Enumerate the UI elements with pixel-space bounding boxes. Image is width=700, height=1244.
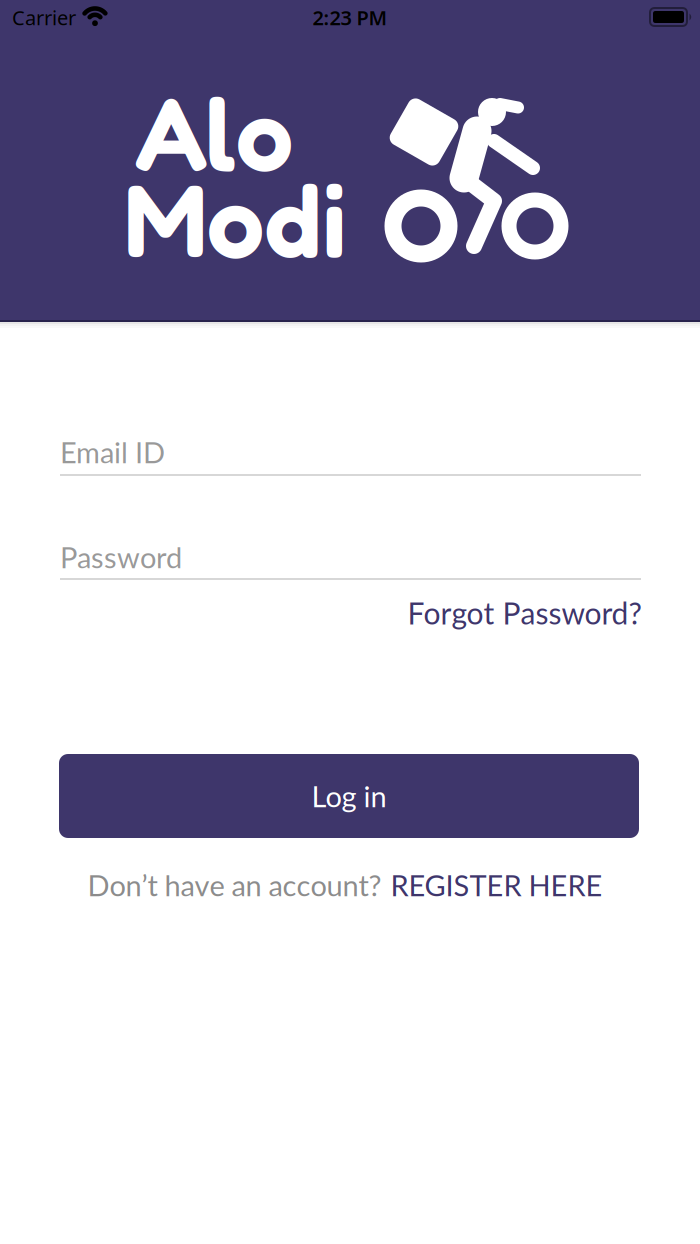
button[interactable]: Email ID bbox=[60, 429, 641, 481]
staticText: Don’t have an account? bbox=[87, 868, 381, 902]
staticText: Password bbox=[60, 540, 182, 574]
staticText: Log in bbox=[311, 779, 386, 813]
staticText: 2:23 PM bbox=[312, 4, 387, 31]
button[interactable]: REGISTER HERE bbox=[390, 868, 602, 902]
staticText: REGISTER HERE bbox=[390, 868, 602, 902]
staticText: Email ID bbox=[60, 435, 165, 469]
button[interactable]: Log in bbox=[59, 754, 639, 838]
button[interactable]: Forgot Password? bbox=[407, 595, 641, 631]
button[interactable]: Password bbox=[60, 534, 641, 586]
staticText: Forgot Password? bbox=[407, 595, 641, 631]
staticText: Modi bbox=[124, 157, 347, 281]
staticText: Alo bbox=[135, 70, 293, 194]
staticText: Carrier bbox=[12, 4, 76, 31]
